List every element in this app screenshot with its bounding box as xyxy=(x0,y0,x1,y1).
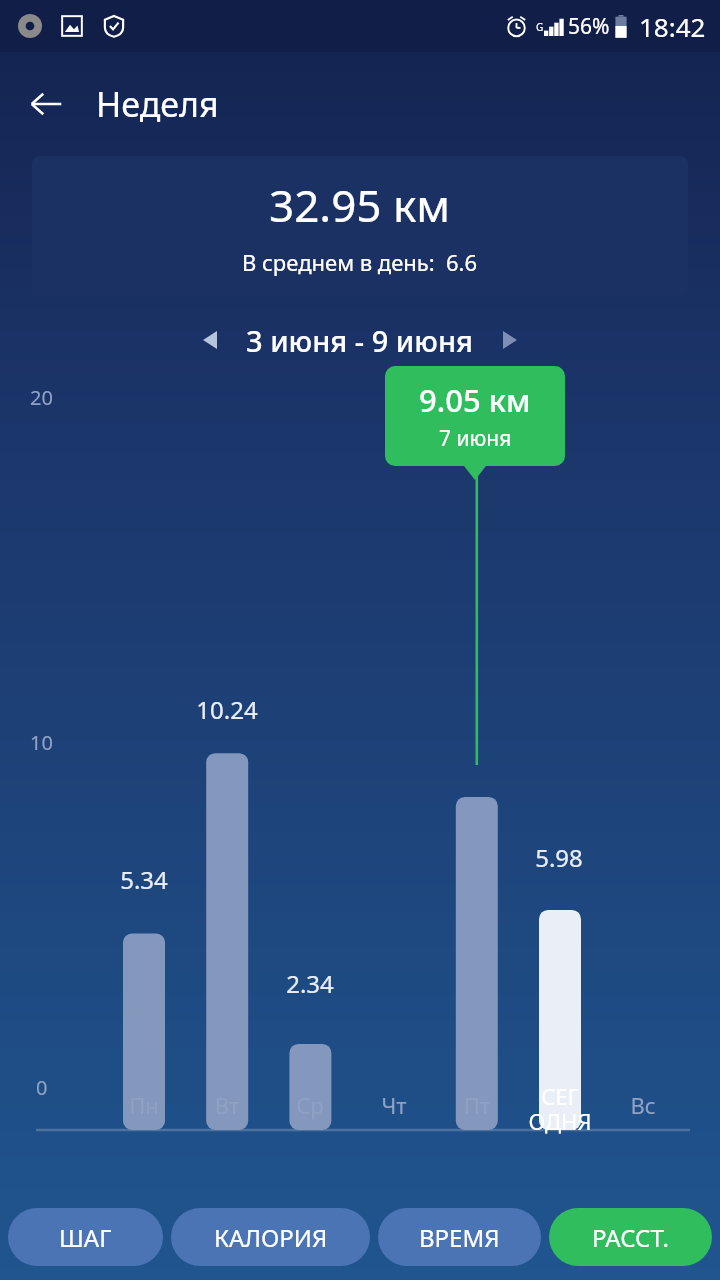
staticText: Вс xyxy=(607,1090,679,1120)
button[interactable]: Next week xyxy=(488,318,532,362)
staticText: ШАГ xyxy=(59,1221,112,1254)
button[interactable]: ВРЕМЯ xyxy=(378,1208,541,1266)
staticText: 10.24 xyxy=(191,693,263,726)
staticText: Чт xyxy=(358,1090,430,1120)
staticText: СЕГ ОДНЯ xyxy=(524,1081,596,1137)
button[interactable]: ШАГ xyxy=(8,1208,163,1266)
staticText: 0 xyxy=(36,1074,48,1101)
button[interactable]: Back xyxy=(18,76,74,132)
button[interactable]: 9.05 км xyxy=(385,366,565,466)
staticText: Пн xyxy=(108,1090,180,1120)
staticText: 3 июня - 9 июня xyxy=(246,321,474,360)
staticText: 18:42 xyxy=(639,9,706,44)
staticText: G xyxy=(536,20,544,34)
button[interactable]: 32.95 км xyxy=(32,156,688,296)
staticText: 7 июня xyxy=(439,424,512,453)
staticText: 5.34 xyxy=(108,863,180,896)
staticText: 32.95 км xyxy=(269,175,451,235)
button[interactable]: РАССТ. xyxy=(549,1208,712,1266)
staticText: КАЛОРИЯ xyxy=(214,1221,328,1254)
staticText: ВРЕМЯ xyxy=(419,1221,500,1254)
staticText: 56% xyxy=(568,12,610,41)
staticText: РАССТ. xyxy=(592,1221,669,1254)
staticText: 5.98 xyxy=(523,841,595,874)
staticText: В среднем в день: 6.6 xyxy=(242,247,478,277)
staticText: Пт xyxy=(441,1090,513,1120)
staticText: Неделя xyxy=(96,81,219,127)
staticText: Вт xyxy=(191,1090,263,1120)
staticText: Ср xyxy=(274,1090,346,1120)
button[interactable]: Previous week xyxy=(188,318,232,362)
staticText: 2.34 xyxy=(274,967,346,1000)
staticText: 10 xyxy=(30,729,53,756)
staticText: 20 xyxy=(30,384,53,411)
button[interactable]: КАЛОРИЯ xyxy=(171,1208,370,1266)
staticText: 9.05 км xyxy=(419,379,531,421)
